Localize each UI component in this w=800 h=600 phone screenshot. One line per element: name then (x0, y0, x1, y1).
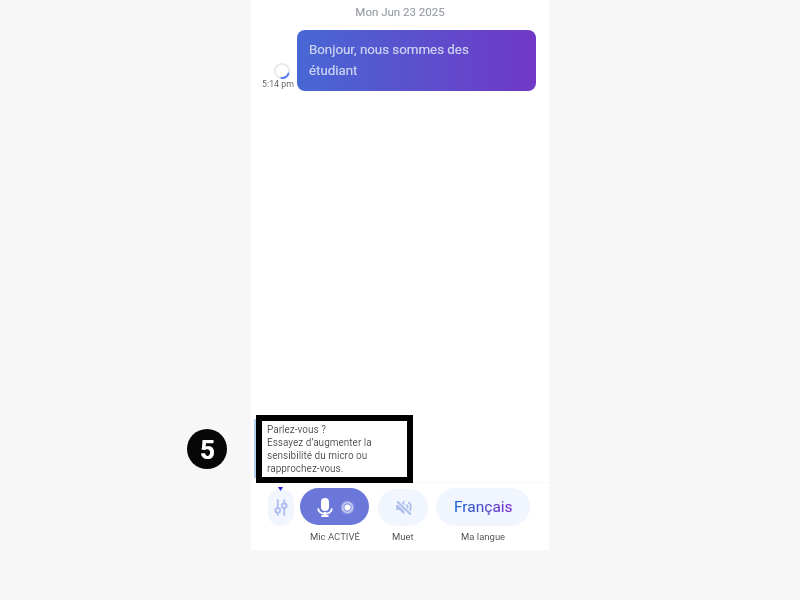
staticText: 5 (200, 435, 215, 465)
button[interactable]: Micro activé (300, 488, 369, 525)
button[interactable]: Bonjour, nous sommes des étudiant (297, 30, 536, 91)
button[interactable]: Étape 5 (187, 429, 227, 469)
staticText: Mon Jun 23 2025 (355, 5, 445, 18)
staticText: Muet (392, 531, 414, 542)
staticText: Mic ACTIVÉ (310, 531, 360, 542)
staticText: 5:14 pm (262, 79, 294, 89)
staticText: Ma langue (461, 531, 506, 542)
staticText: Bonjour, nous sommes des étudiant (309, 42, 514, 78)
button[interactable]: Français (436, 488, 530, 526)
button[interactable]: Réglages audio (268, 489, 294, 526)
staticText: Français (454, 498, 513, 516)
staticText: Parlez-vous ? Essayez d’augmenter la sen… (267, 424, 372, 475)
button[interactable]: Muet (378, 489, 428, 526)
